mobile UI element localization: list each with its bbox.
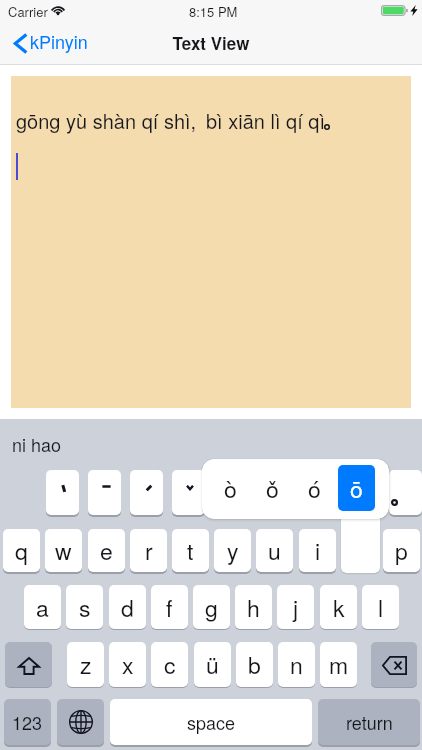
button[interactable]: d	[109, 585, 146, 629]
button[interactable]: l	[362, 585, 399, 629]
button[interactable]: ó	[296, 465, 333, 511]
staticText: ō	[350, 472, 363, 505]
button[interactable]: kPinyin	[6, 24, 98, 62]
button[interactable]: b	[236, 642, 273, 687]
button[interactable]: j	[277, 585, 314, 629]
staticText: return	[346, 709, 393, 735]
staticText: ǒ	[266, 472, 279, 505]
staticText: 8:15 PM	[189, 2, 238, 21]
staticText: y	[227, 534, 239, 567]
button[interactable]: y	[214, 529, 251, 572]
button[interactable]: h	[235, 585, 272, 629]
staticText: s	[79, 591, 91, 624]
staticText: b	[248, 648, 261, 681]
staticText: p	[395, 534, 408, 567]
staticText: q	[15, 534, 28, 567]
staticText: x	[122, 648, 134, 681]
button[interactable]: ò	[212, 465, 249, 511]
button[interactable]: Shift	[5, 642, 52, 687]
button[interactable]: space	[110, 699, 312, 745]
staticText: 123	[12, 709, 43, 735]
button[interactable]: Fourth tone	[46, 470, 79, 515]
staticText: r	[145, 534, 153, 567]
staticText: h	[247, 591, 260, 624]
button[interactable]: return	[318, 699, 420, 745]
staticText: a	[36, 591, 49, 624]
button[interactable]: e	[88, 529, 125, 572]
staticText: t	[187, 534, 194, 567]
button[interactable]: k	[320, 585, 357, 629]
button[interactable]: p	[383, 529, 420, 572]
button[interactable]: s	[66, 585, 103, 629]
staticText: space	[187, 709, 236, 735]
staticText: i	[315, 534, 321, 567]
button[interactable]: t	[172, 529, 209, 572]
button[interactable]: ō	[338, 465, 375, 511]
button[interactable]: First tone	[88, 470, 121, 515]
button[interactable]: ǒ	[254, 465, 291, 511]
button[interactable]: Full stop	[389, 470, 422, 515]
button[interactable]: Next keyboard	[57, 699, 104, 745]
button[interactable]: w	[45, 529, 82, 572]
staticText: d	[121, 591, 134, 624]
staticText: Text View	[0, 31, 422, 55]
button[interactable]: g	[193, 585, 230, 629]
staticText: c	[164, 648, 176, 681]
staticText: j	[293, 591, 299, 624]
button[interactable]: m	[320, 642, 357, 687]
button[interactable]: a	[24, 585, 61, 629]
staticText: m	[329, 648, 349, 681]
button[interactable]: f	[151, 585, 188, 629]
staticText: g	[205, 591, 218, 624]
staticText: n	[290, 648, 303, 681]
button[interactable]: Backspace	[371, 642, 417, 687]
staticText: ò	[224, 472, 237, 505]
button[interactable]: z	[67, 642, 104, 687]
staticText: e	[100, 534, 113, 567]
staticText: z	[80, 648, 92, 681]
staticText: bì xiān lì qí qì	[206, 106, 325, 135]
button[interactable]: i	[299, 529, 336, 572]
staticText: gōng yù shàn qí shì,	[16, 106, 197, 135]
staticText: w	[55, 534, 72, 567]
button[interactable]: q	[3, 529, 40, 572]
button[interactable]: Second tone	[130, 470, 163, 515]
staticText: kPinyin	[30, 28, 88, 54]
staticText: k	[333, 591, 345, 624]
button[interactable]: u	[256, 529, 293, 572]
staticText: ni hao	[12, 431, 62, 457]
button[interactable]: ü	[194, 642, 231, 687]
button[interactable]: c	[151, 642, 188, 687]
button[interactable]: x	[109, 642, 146, 687]
staticText: l	[378, 591, 384, 624]
button[interactable]: r	[130, 529, 167, 572]
staticText: f	[166, 591, 173, 624]
button[interactable]: 123	[4, 699, 51, 745]
staticText: u	[268, 534, 281, 567]
button[interactable]: n	[278, 642, 315, 687]
staticText: ü	[206, 648, 219, 681]
staticText: ó	[308, 472, 321, 505]
staticText: Carrier	[8, 2, 48, 21]
button[interactable]: Third tone	[172, 470, 205, 515]
